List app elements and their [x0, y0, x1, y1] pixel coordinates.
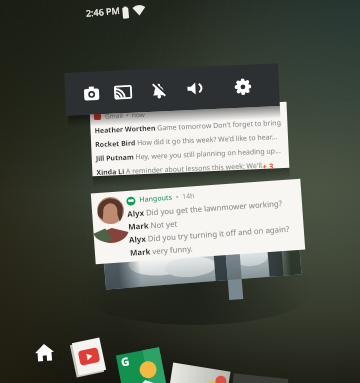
staticText: Gmail • now: [105, 110, 145, 121]
staticText: Hangouts: [139, 193, 173, 205]
button[interactable]: [83, 84, 101, 103]
button[interactable]: [33, 341, 56, 364]
staticText: Jill Putnam Hey, were you still planning…: [96, 146, 282, 164]
staticText: 2:46 PM: [85, 4, 120, 19]
staticText: Heather Worthen Game tomorrow Don't forg…: [94, 118, 282, 136]
button[interactable]: [72, 337, 106, 375]
button[interactable]: [169, 363, 230, 383]
staticText: G: [120, 353, 130, 370]
staticText: Xinda Li A reminder about lessons this w…: [96, 161, 262, 176]
button[interactable]: [102, 228, 301, 290]
button[interactable]: Hangouts: [91, 179, 305, 264]
staticText: Alyx Did you get the lawnmower working?: [127, 198, 283, 220]
button[interactable]: [185, 80, 203, 98]
button[interactable]: [114, 83, 132, 102]
staticText: Alyx Did you try turning it off and on a…: [129, 224, 290, 246]
staticText: Rocket Bird How did it go this week? We'…: [95, 132, 277, 150]
staticText: + 3: [262, 160, 274, 169]
button[interactable]: Gmail • now: [90, 102, 289, 176]
staticText: Mark very funny.: [130, 243, 193, 259]
staticText: Mark Not yet: [128, 218, 178, 233]
staticText: • 14h: [172, 191, 195, 203]
button[interactable]: G: [116, 347, 166, 383]
button[interactable]: [150, 81, 168, 100]
button[interactable]: [234, 77, 252, 96]
